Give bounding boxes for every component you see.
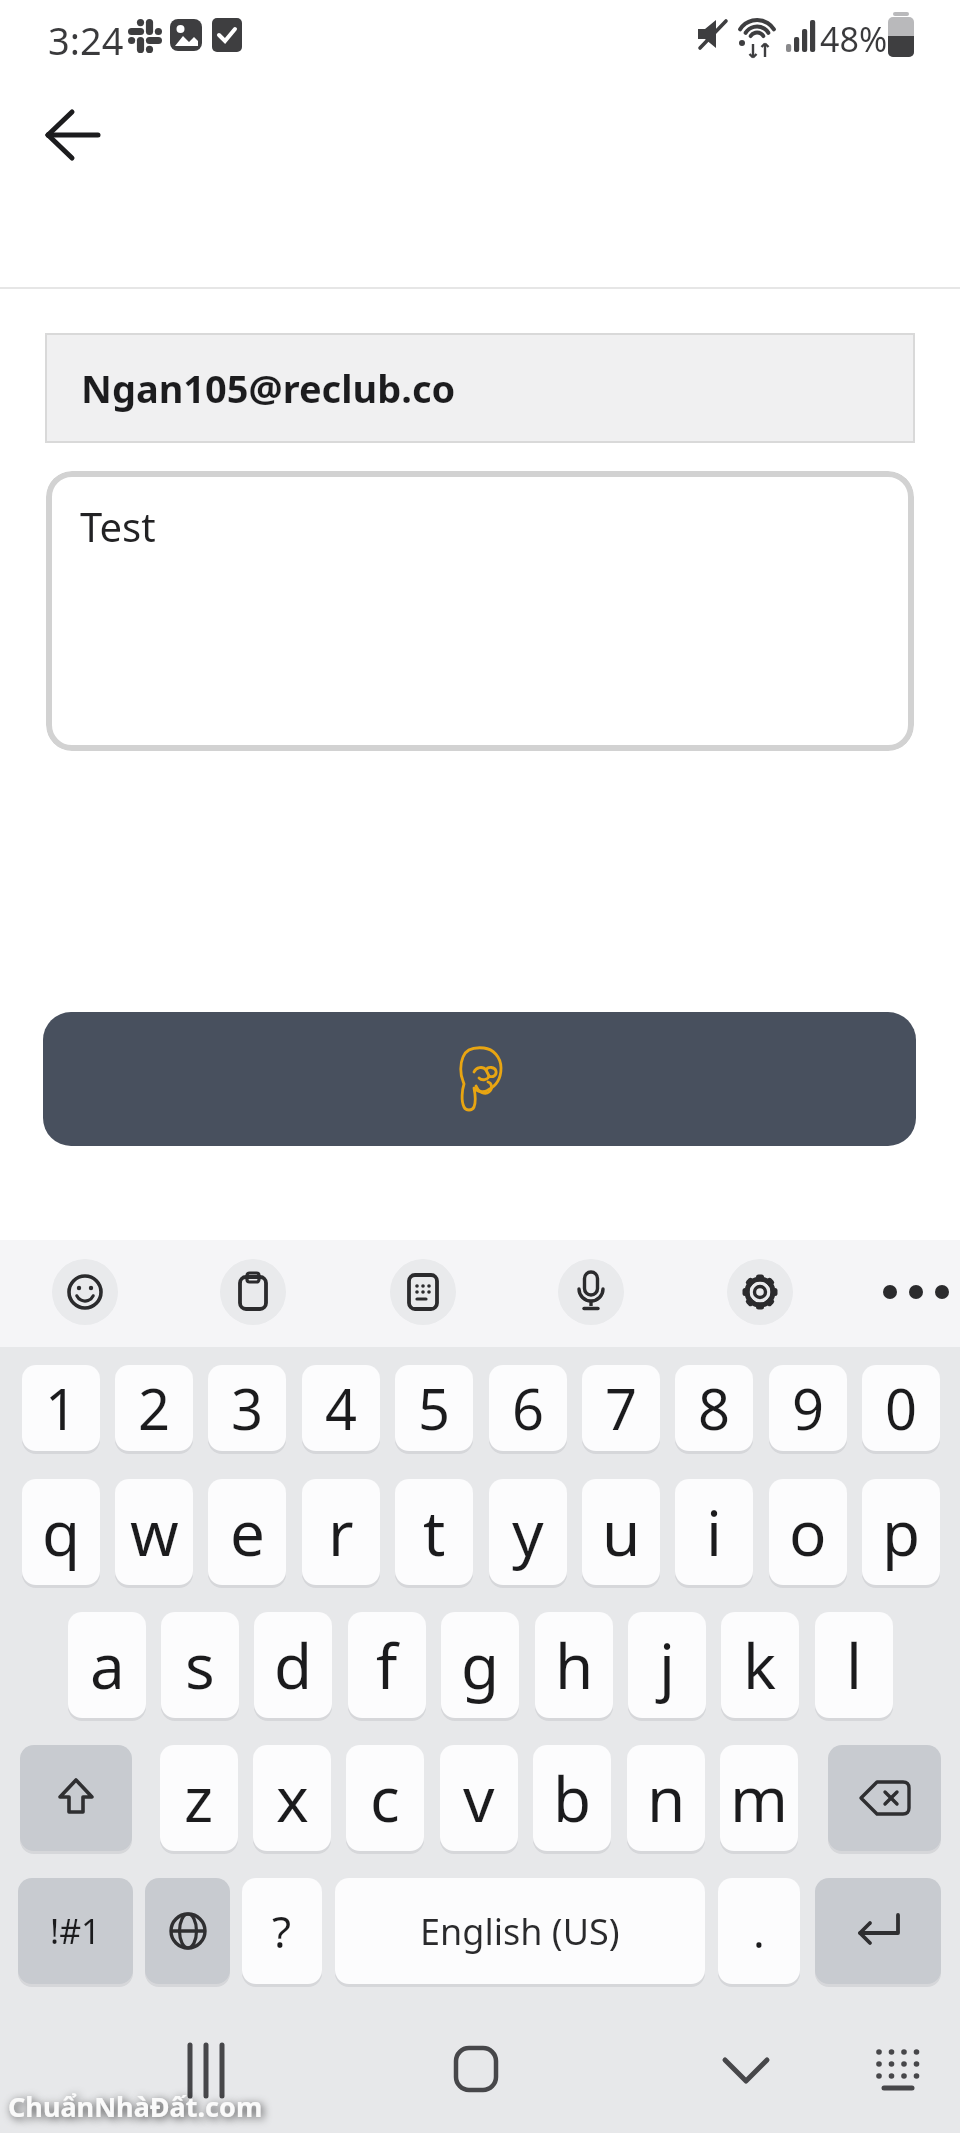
button[interactable] [874,1262,954,1322]
staticText: r [328,1490,354,1574]
staticText: 8 [698,1370,731,1446]
button[interactable]: 1 [22,1365,100,1451]
button[interactable]: 5 [395,1365,473,1451]
staticText: i [706,1490,722,1574]
staticText: !#1 [50,1908,101,1954]
staticText: j [659,1623,675,1707]
button[interactable]: ? [242,1878,322,1984]
button[interactable] [558,1259,624,1325]
button[interactable]: b [533,1745,611,1851]
staticText: d [274,1623,313,1707]
button[interactable]: j [628,1612,706,1718]
staticText: 2 [138,1370,171,1446]
button[interactable] [828,1745,941,1851]
staticText: f [376,1623,398,1707]
button[interactable]: 3 [208,1365,286,1451]
button[interactable]: p [862,1479,940,1585]
button[interactable]: h [535,1612,613,1718]
staticText: 0 [885,1370,918,1446]
button[interactable]: f [348,1612,426,1718]
button[interactable]: k [721,1612,799,1718]
button[interactable]: x [253,1745,331,1851]
button[interactable] [815,1878,941,1984]
staticText: o [789,1490,827,1574]
button[interactable]: Test [46,471,914,751]
button[interactable]: c [346,1745,424,1851]
button[interactable] [727,1259,793,1325]
button[interactable] [52,1259,118,1325]
button[interactable]: l [815,1612,893,1718]
staticText: 9 [792,1370,825,1446]
button[interactable]: English (US) [335,1878,705,1984]
staticText: u [602,1490,641,1574]
button[interactable]: e [208,1479,286,1585]
button[interactable]: 0 [862,1365,940,1451]
button[interactable] [43,1012,916,1146]
staticText: w [130,1490,179,1574]
staticText: k [743,1623,777,1707]
staticText: ChuẩnNhàĐất.com [8,2088,263,2125]
staticText: v [463,1756,495,1840]
button[interactable]: 9 [769,1365,847,1451]
button[interactable]: w [115,1479,193,1585]
staticText: p [882,1490,921,1574]
staticText: 1 [45,1370,78,1446]
button[interactable] [220,1259,286,1325]
staticText: 48% [820,16,888,62]
button[interactable]: 6 [489,1365,567,1451]
staticText: 5 [418,1370,451,1446]
staticText: ? [272,1901,292,1961]
staticText: y [512,1490,544,1574]
button[interactable]: g [441,1612,519,1718]
button[interactable]: . [718,1878,800,1984]
staticText: t [423,1490,446,1574]
staticText: e [230,1490,265,1574]
staticText: 7 [605,1370,638,1446]
button[interactable]: u [582,1479,660,1585]
button[interactable]: a [68,1612,146,1718]
button[interactable]: q [22,1479,100,1585]
staticText: b [553,1756,592,1840]
staticText: 3 [231,1370,264,1446]
staticText: . [753,1901,765,1961]
button[interactable] [710,2030,782,2110]
button[interactable]: y [489,1479,567,1585]
staticText: n [647,1756,686,1840]
button[interactable]: m [720,1745,798,1851]
staticText: z [184,1756,214,1840]
button[interactable] [145,1878,230,1984]
button[interactable] [170,2030,242,2110]
button[interactable]: 4 [302,1365,380,1451]
button[interactable] [862,2030,934,2110]
staticText: s [185,1623,215,1707]
button[interactable]: Ngan105@reclub.co [45,333,915,443]
button[interactable]: n [627,1745,705,1851]
staticText: a [90,1623,125,1707]
button[interactable]: !#1 [18,1878,133,1984]
button[interactable]: 7 [582,1365,660,1451]
staticText: Ngan105@reclub.co [81,362,456,414]
staticText: x [276,1756,309,1840]
staticText: 4 [325,1370,358,1446]
button[interactable]: z [160,1745,238,1851]
button[interactable]: o [769,1479,847,1585]
button[interactable] [440,2030,512,2110]
button[interactable]: 2 [115,1365,193,1451]
staticText: m [730,1756,788,1840]
button[interactable]: s [161,1612,239,1718]
staticText: q [42,1490,81,1574]
staticText: c [370,1756,400,1840]
button[interactable] [38,102,104,168]
staticText: g [461,1623,500,1707]
button[interactable]: d [254,1612,332,1718]
button[interactable]: v [440,1745,518,1851]
staticText: Test [80,499,156,553]
button[interactable]: r [302,1479,380,1585]
button[interactable]: t [395,1479,473,1585]
staticText: l [846,1623,862,1707]
staticText: 3:24 [48,14,124,66]
button[interactable]: i [675,1479,753,1585]
button[interactable] [20,1745,132,1851]
button[interactable] [390,1259,456,1325]
button[interactable]: 8 [675,1365,753,1451]
